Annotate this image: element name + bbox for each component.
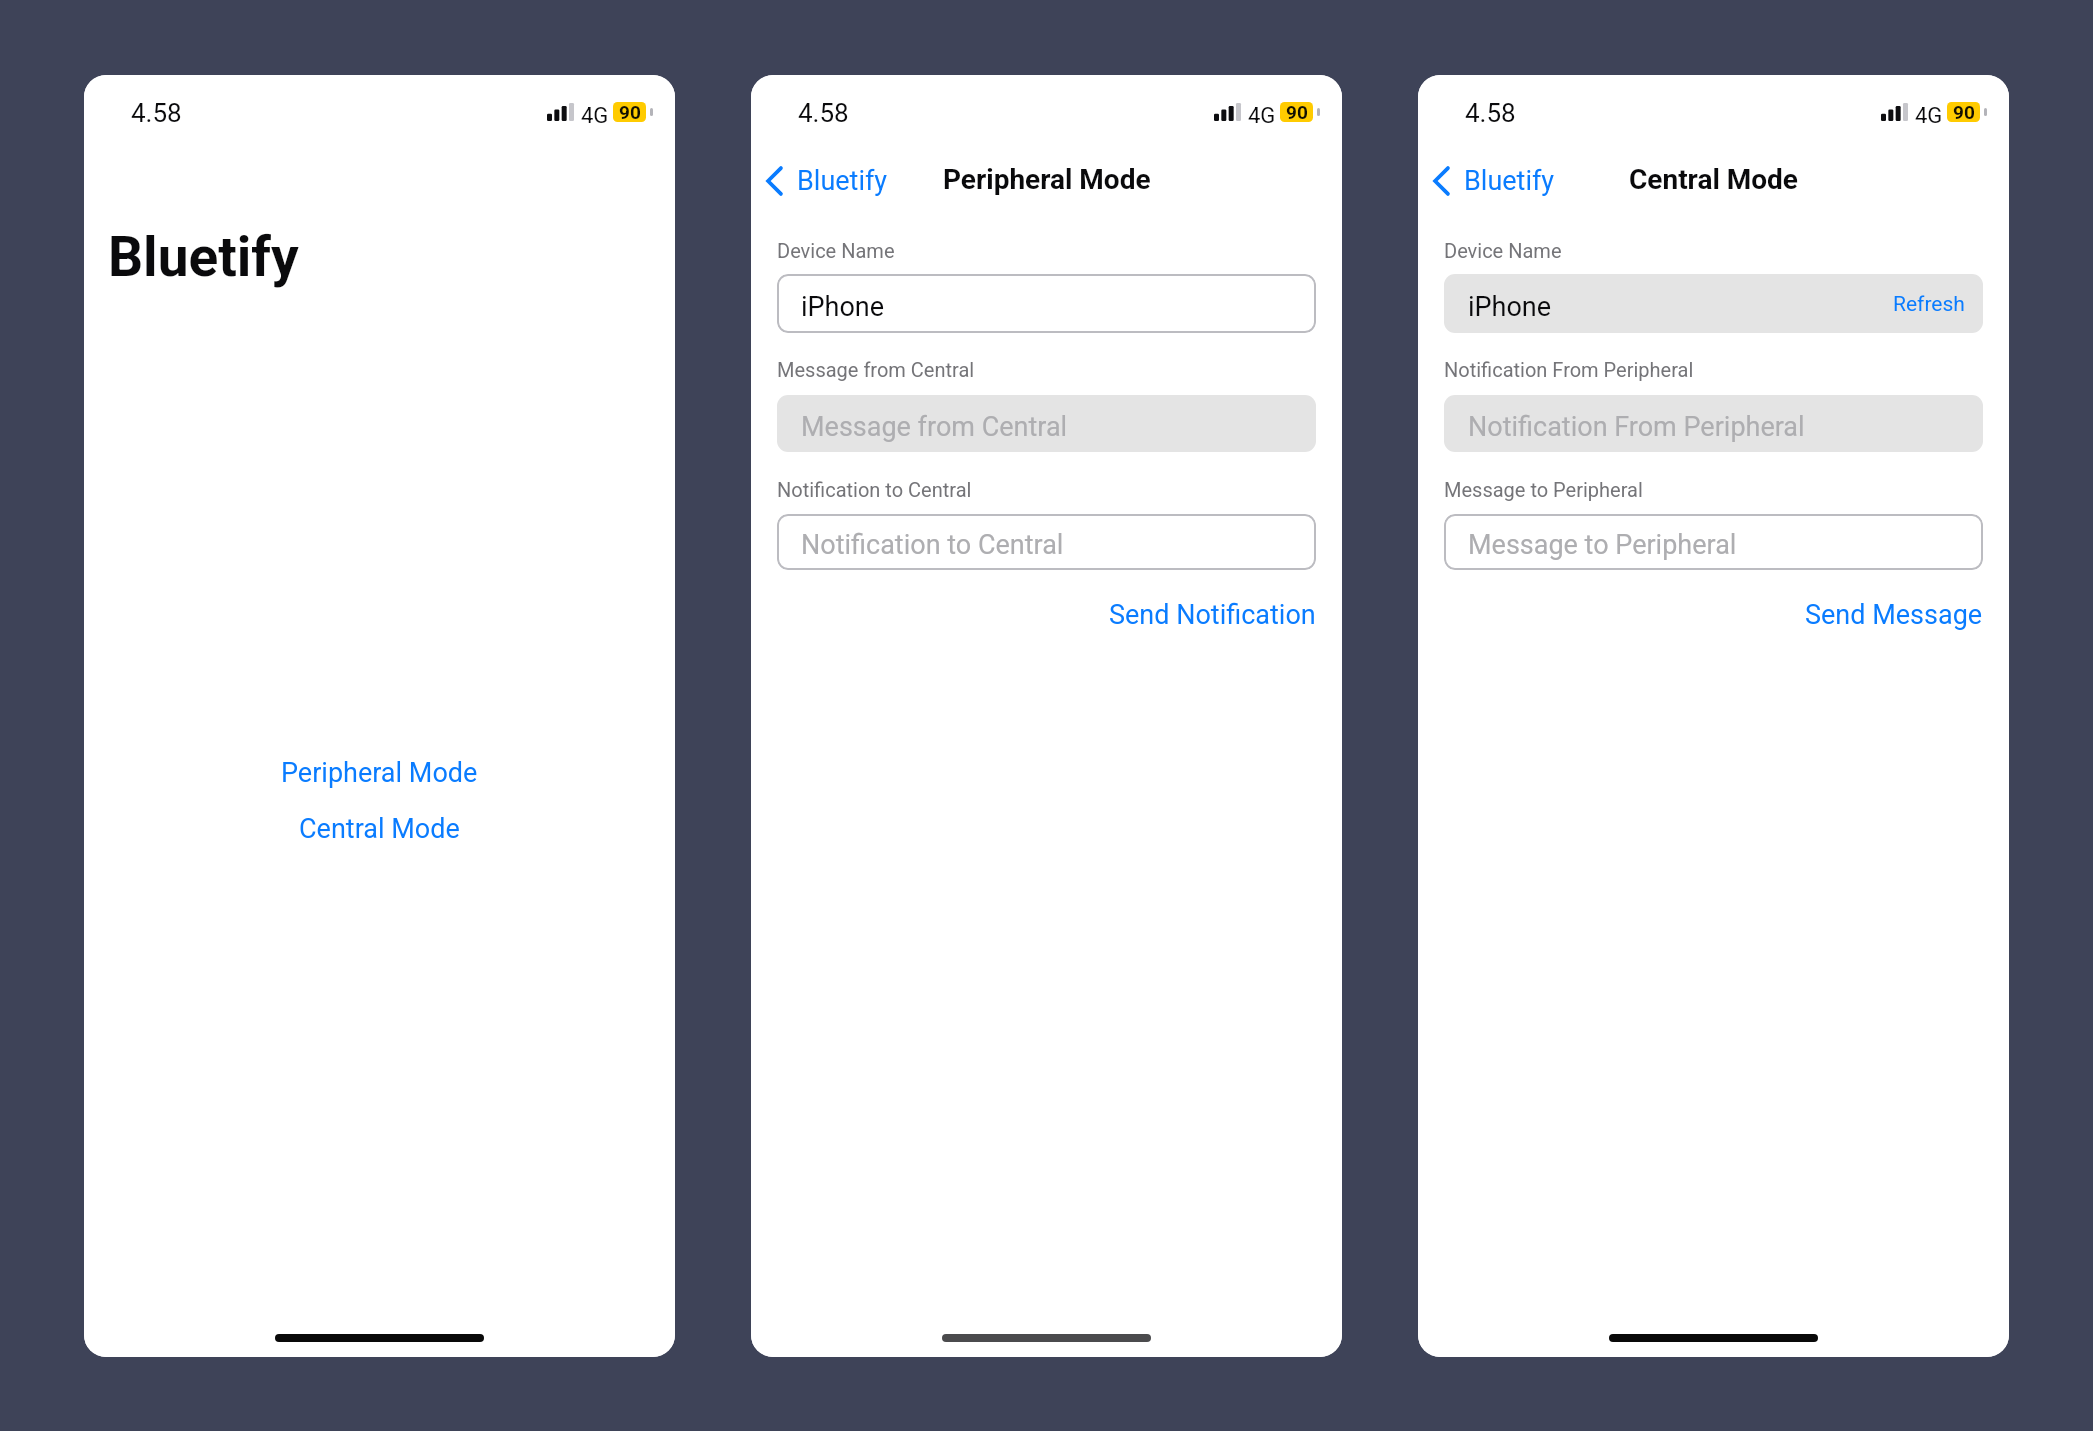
staticText: Message to Peripheral [1444,478,1643,501]
button[interactable]: Message to Peripheral [1444,514,1983,570]
staticText: Message from Central [801,411,1068,443]
staticText: Device Name [777,239,895,262]
staticText: iPhone [1468,291,1552,323]
button[interactable]: Send Notification [1095,591,1342,639]
staticText: 90 [1953,102,1975,121]
button[interactable]: Peripheral Mode [261,749,498,797]
button[interactable]: Refresh [1877,281,1983,326]
staticText: Bluetify [1464,165,1555,197]
other: Back to Bluetify [1433,166,1450,196]
staticText: 4G [1915,103,1943,129]
staticText: Peripheral Mode [943,163,1151,196]
staticText: Central Mode [299,813,460,845]
staticText: Send Message [1805,599,1983,631]
staticText: 4G [581,103,609,129]
staticText: Device Name [1444,239,1562,262]
button[interactable]: Central Mode [279,805,480,853]
staticText: Bluetify [797,165,888,197]
staticText: Central Mode [1629,163,1798,196]
button[interactable]: Notification to Central [777,514,1316,570]
staticText: Bluetify [108,225,299,289]
button[interactable]: Send Message [1791,591,2009,639]
staticText: Message to Peripheral [1468,529,1737,561]
staticText: iPhone [801,291,885,323]
staticText: 4G [1248,103,1276,129]
staticText: Message from Central [777,358,975,381]
button[interactable]: Back to Bluetify [756,155,898,207]
button[interactable]: Back to Bluetify [1423,155,1565,207]
staticText: 4.58 [798,98,849,128]
button[interactable]: iPhone [1444,274,1983,333]
staticText: Notification From Peripheral [1444,358,1694,381]
button[interactable]: Notification From Peripheral [1444,395,1983,452]
button[interactable]: Message from Central [777,395,1316,452]
staticText: 4.58 [1465,98,1516,128]
staticText: Send Notification [1109,599,1316,631]
staticText: Notification From Peripheral [1468,411,1805,443]
button[interactable]: iPhone [777,274,1316,333]
staticText: Peripheral Mode [281,757,478,789]
other: Back to Bluetify [766,166,783,196]
staticText: 4.58 [131,98,182,128]
staticText: Notification to Central [801,529,1064,561]
staticText: 90 [619,102,641,121]
staticText: Refresh [1893,292,1965,317]
staticText: Notification to Central [777,478,972,501]
staticText: 90 [1286,102,1308,121]
